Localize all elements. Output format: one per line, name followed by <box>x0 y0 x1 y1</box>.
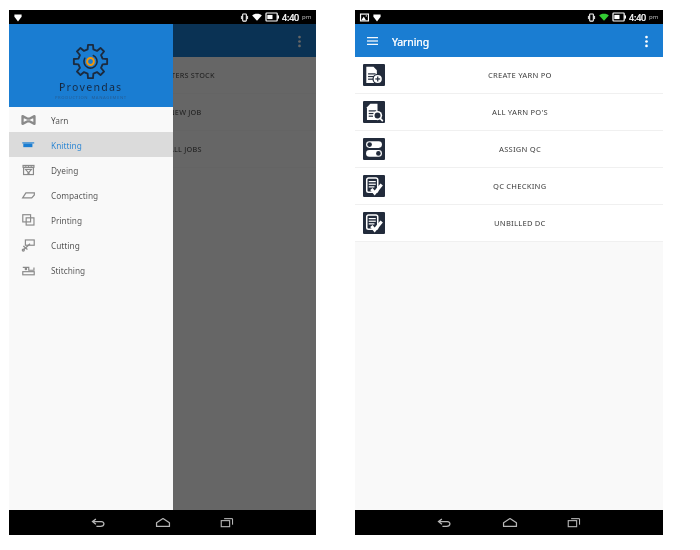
button[interactable]: More options <box>286 28 312 54</box>
button[interactable]: Compacting <box>9 182 173 207</box>
staticText: MASTERS STOCK <box>155 70 215 80</box>
staticText: PRODUCTION MANAGEMENT <box>55 95 127 101</box>
button[interactable]: Printing <box>9 207 173 232</box>
staticText: Dyeing <box>51 165 79 176</box>
button[interactable]: Dyeing <box>9 157 173 182</box>
button[interactable]: Home <box>498 511 521 534</box>
staticText: ALL YARN PO'S <box>492 107 548 117</box>
staticText: Printing <box>51 215 83 226</box>
staticText: Compacting <box>51 190 99 201</box>
button[interactable]: Open navigation drawer <box>360 29 384 53</box>
staticText: UNBILLED DC <box>494 218 546 228</box>
button[interactable]: Home <box>151 511 174 534</box>
staticText: ALL JOBS <box>169 144 202 154</box>
staticText: Knitting <box>51 140 82 151</box>
staticText: QC CHECKING <box>493 181 547 191</box>
staticText: 4:40 <box>282 11 300 23</box>
button[interactable]: Cutting <box>9 232 173 257</box>
staticText: CREATE YARN PO <box>488 70 552 80</box>
button[interactable]: Back <box>87 511 110 534</box>
staticText: Yarn <box>51 115 69 126</box>
button[interactable]: Yarn <box>9 107 173 132</box>
button[interactable]: More options <box>633 28 659 54</box>
staticText: Stitching <box>51 265 86 276</box>
staticText: 4:40 <box>629 11 647 23</box>
staticText: ASSIGN QC <box>499 144 541 154</box>
staticText: pm <box>302 13 312 21</box>
button[interactable]: CREATE YARN PO <box>355 57 663 94</box>
staticText: NEW JOB <box>169 107 202 117</box>
button[interactable]: QC CHECKING <box>355 168 663 205</box>
button[interactable]: ALL JOBS <box>9 131 316 168</box>
staticText: Yarning <box>392 35 430 49</box>
button[interactable]: UNBILLED DC <box>355 205 663 242</box>
button[interactable]: Recent apps <box>562 511 585 534</box>
staticText: Cutting <box>51 240 80 251</box>
button[interactable]: ALL YARN PO'S <box>355 94 663 131</box>
button[interactable]: NEW JOB <box>9 94 316 131</box>
staticText: Provendas <box>59 80 123 94</box>
button[interactable]: MASTERS STOCK <box>9 57 316 94</box>
button[interactable]: Knitting <box>9 132 173 157</box>
button[interactable]: ASSIGN QC <box>355 131 663 168</box>
button[interactable]: Back <box>433 511 456 534</box>
button[interactable]: Stitching <box>9 257 173 282</box>
button[interactable]: Recent apps <box>215 511 238 534</box>
staticText: pm <box>649 13 659 21</box>
